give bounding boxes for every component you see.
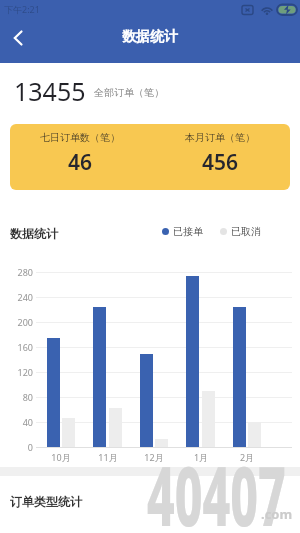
staticText: 11月 [88, 451, 128, 463]
staticText: .com [261, 505, 293, 523]
staticText: 已取消 [231, 225, 261, 238]
staticText: 456 [202, 148, 239, 177]
staticText: 12月 [134, 451, 174, 463]
staticText: 2月 [227, 451, 267, 463]
staticText: 全部订单（笔） [94, 86, 164, 99]
staticText: 80 [8, 391, 33, 403]
staticText: 46 [68, 148, 93, 177]
staticText: 订单类型统计 [10, 494, 82, 509]
staticText: 数据统计 [122, 28, 178, 46]
button[interactable] [4, 24, 32, 52]
staticText: 1月 [181, 451, 221, 463]
button[interactable]: 七日订单数（笔） [10, 124, 290, 190]
staticText: 数据统计 [10, 226, 58, 241]
staticText: 10月 [41, 451, 81, 463]
staticText: 160 [8, 341, 33, 353]
staticText: 120 [8, 366, 33, 378]
staticText: 240 [8, 291, 33, 303]
staticText: 200 [8, 316, 33, 328]
staticText: 本月订单（笔） [185, 131, 255, 144]
staticText: 下午2:21 [4, 3, 40, 15]
staticText: 13455 [14, 74, 86, 108]
staticText: 40 [8, 416, 33, 428]
staticText: 280 [8, 266, 33, 278]
staticText: 40407 [147, 439, 286, 533]
staticText: 0 [8, 441, 33, 453]
staticText: 七日订单数（笔） [40, 131, 120, 144]
staticText: 已接单 [173, 225, 203, 238]
